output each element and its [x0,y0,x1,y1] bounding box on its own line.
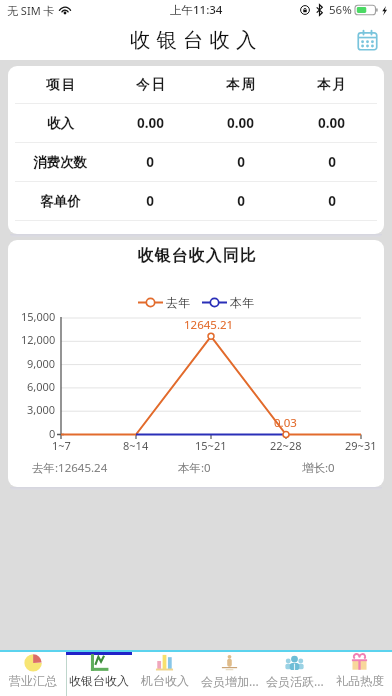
staticText: 0 [328,192,336,210]
staticText: 去年:12645.24 [32,460,108,476]
staticText: 0.03 [274,415,297,431]
staticText: 收银台收入同比 [137,246,256,266]
staticText: 0 [237,153,245,171]
button[interactable]: 礼品热度 [327,652,392,696]
staticText: 收入 [47,115,74,132]
button[interactable]: 收银台收入 [66,652,132,696]
staticText: 营业汇总 [9,673,57,688]
staticText: 56% [329,2,352,18]
staticText: 本周 [225,76,256,93]
staticText: 增长:0 [302,460,335,476]
staticText: 3,000 [27,402,56,417]
staticText: 本年 [230,295,254,310]
button[interactable]: 机台收入 [132,652,197,696]
staticText: 客单价 [40,193,81,210]
staticText: 9,000 [27,356,56,371]
staticText: 22~28 [270,438,302,453]
button[interactable]: 营业汇总 [0,652,66,696]
staticText: 机台收入 [141,673,189,688]
button[interactable]: 会员增加... [197,652,262,696]
staticText: 消费次数 [33,154,87,171]
staticText: 无 SIM 卡 [7,3,55,18]
staticText: 0 [146,153,154,171]
staticText: 礼品热度 [336,673,384,688]
staticText: 去年 [166,295,190,310]
staticText: 1~7 [52,438,71,453]
staticText: 本月 [316,76,347,93]
staticText: 本年:0 [178,460,211,476]
button[interactable]: Select date [350,23,384,57]
staticText: 15,000 [21,309,56,324]
staticText: 今日 [135,76,166,93]
staticText: 0 [328,153,336,171]
staticText: 收银台收入 [69,673,129,688]
staticText: 15~21 [195,438,227,453]
staticText: 29~31 [345,438,377,453]
staticText: 0 [49,426,56,441]
staticText: 会员活跃... [266,673,324,689]
staticText: 12,000 [21,332,56,347]
staticText: 12645.21 [184,317,234,333]
staticText: 收银台收入 [130,27,263,53]
button[interactable]: 会员活跃... [262,652,327,696]
staticText: 0 [146,192,154,210]
staticText: 8~14 [123,438,149,453]
staticText: 会员增加... [201,673,259,689]
staticText: 0 [237,192,245,210]
staticText: 6,000 [27,379,56,394]
staticText: 0.00 [227,114,254,132]
staticText: 0.00 [318,114,345,132]
staticText: 0.00 [137,114,164,132]
staticText: 上午11:34 [170,2,223,18]
staticText: 项目 [45,76,76,93]
